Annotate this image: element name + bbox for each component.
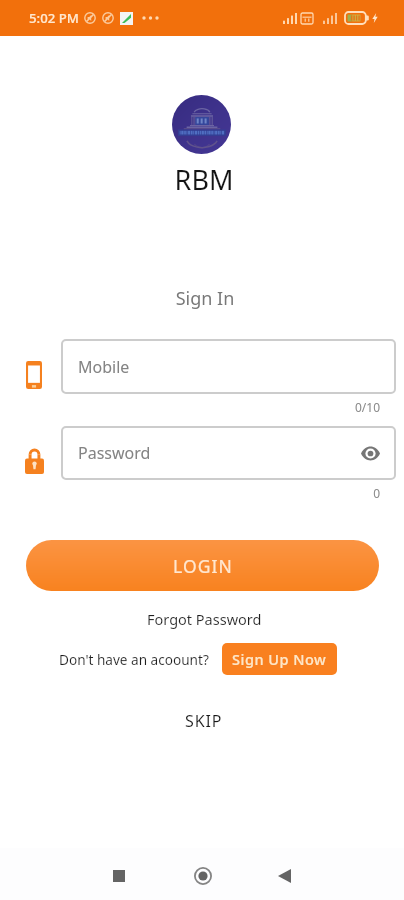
button[interactable]: Recent apps bbox=[97, 854, 141, 898]
staticText: 0/10 bbox=[0, 399, 380, 415]
staticText: LOGIN bbox=[173, 554, 233, 578]
staticText: 5:02 PM bbox=[29, 9, 79, 27]
staticText: Mobile bbox=[78, 356, 130, 378]
button[interactable]: Sign Up Now bbox=[222, 643, 337, 675]
staticText: Don't have an acoount? bbox=[59, 650, 209, 669]
button[interactable]: Back bbox=[262, 854, 306, 898]
staticText: Password bbox=[78, 442, 151, 464]
button[interactable]: Home bbox=[181, 854, 225, 898]
button[interactable]: Forgot Password bbox=[137, 605, 272, 633]
staticText: RBM bbox=[2, 161, 404, 198]
staticText: 0 bbox=[0, 485, 380, 501]
other: Mobile number bbox=[26, 361, 42, 389]
button[interactable]: Password bbox=[61, 426, 396, 480]
other: Password bbox=[25, 448, 44, 474]
staticText: Sign In bbox=[3, 286, 404, 311]
button[interactable]: SKIP bbox=[171, 705, 237, 737]
button[interactable]: Show password bbox=[356, 439, 384, 467]
button[interactable]: Mobile bbox=[61, 339, 396, 394]
button[interactable]: LOGIN bbox=[26, 540, 379, 591]
staticText: Forgot Password bbox=[147, 609, 262, 629]
staticText: SKIP bbox=[185, 710, 223, 732]
staticText: Sign Up Now bbox=[232, 649, 327, 669]
